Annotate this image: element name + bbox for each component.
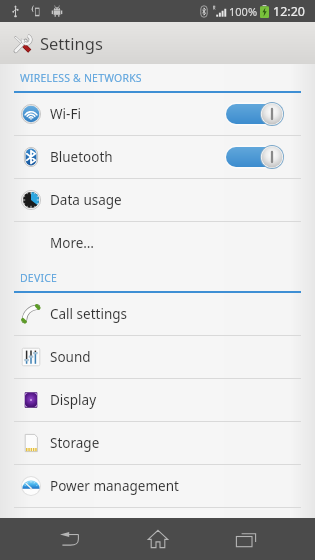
button[interactable]: Wi-Fi: [0, 93, 315, 135]
button[interactable]: Call settings: [0, 293, 315, 335]
staticText: Bluetooth: [50, 148, 113, 166]
button[interactable]: Sound: [0, 336, 315, 378]
button[interactable]: Home: [114, 518, 202, 560]
button[interactable]: Back: [26, 518, 114, 560]
button[interactable]: Toggle on: [225, 102, 284, 126]
staticText: Settings: [40, 32, 103, 54]
staticText: 12:20: [273, 3, 305, 20]
staticText: Sound: [50, 348, 91, 366]
button[interactable]: Toggle on: [225, 145, 284, 169]
button[interactable]: More…: [0, 222, 315, 264]
button[interactable]: Data usage: [0, 179, 315, 221]
staticText: 100%: [229, 4, 258, 19]
staticText: Wi-Fi: [50, 105, 81, 123]
staticText: Display: [50, 391, 97, 409]
button[interactable]: Power management: [0, 465, 315, 507]
staticText: Storage: [50, 434, 100, 452]
staticText: WIRELESS & NETWORKS: [20, 71, 142, 85]
staticText: Power management: [50, 477, 179, 495]
staticText: Data usage: [50, 191, 122, 209]
staticText: Call settings: [50, 305, 128, 323]
button[interactable]: Bluetooth: [0, 136, 315, 178]
staticText: DEVICE: [20, 271, 58, 285]
staticText: More…: [50, 234, 95, 252]
button[interactable]: Storage: [0, 422, 315, 464]
button[interactable]: Display: [0, 379, 315, 421]
button[interactable]: Recent apps: [202, 518, 290, 560]
